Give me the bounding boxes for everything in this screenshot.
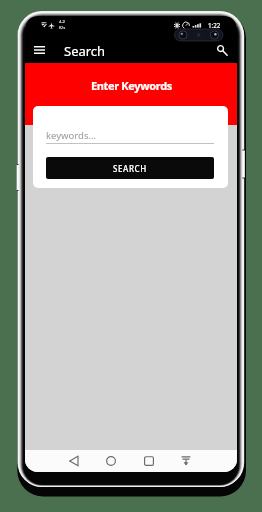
staticText: 4.2 — [59, 19, 65, 25]
button[interactable]: Back — [64, 451, 84, 471]
button[interactable]: Search — [212, 40, 232, 60]
button[interactable]: keywords... — [46, 128, 214, 144]
button[interactable]: SEARCH — [46, 157, 214, 179]
staticText: SEARCH — [113, 163, 147, 174]
button[interactable]: Hide keyboard — [176, 451, 196, 471]
staticText: Search — [64, 42, 106, 60]
staticText: 1:22 — [208, 21, 221, 29]
staticText: K/s — [59, 25, 66, 31]
button[interactable]: Recent apps — [139, 451, 159, 471]
button[interactable]: Open navigation menu — [29, 40, 49, 60]
staticText: keywords... — [46, 129, 97, 142]
staticText: Enter Keywords — [91, 78, 172, 93]
button[interactable]: Home — [101, 451, 121, 471]
